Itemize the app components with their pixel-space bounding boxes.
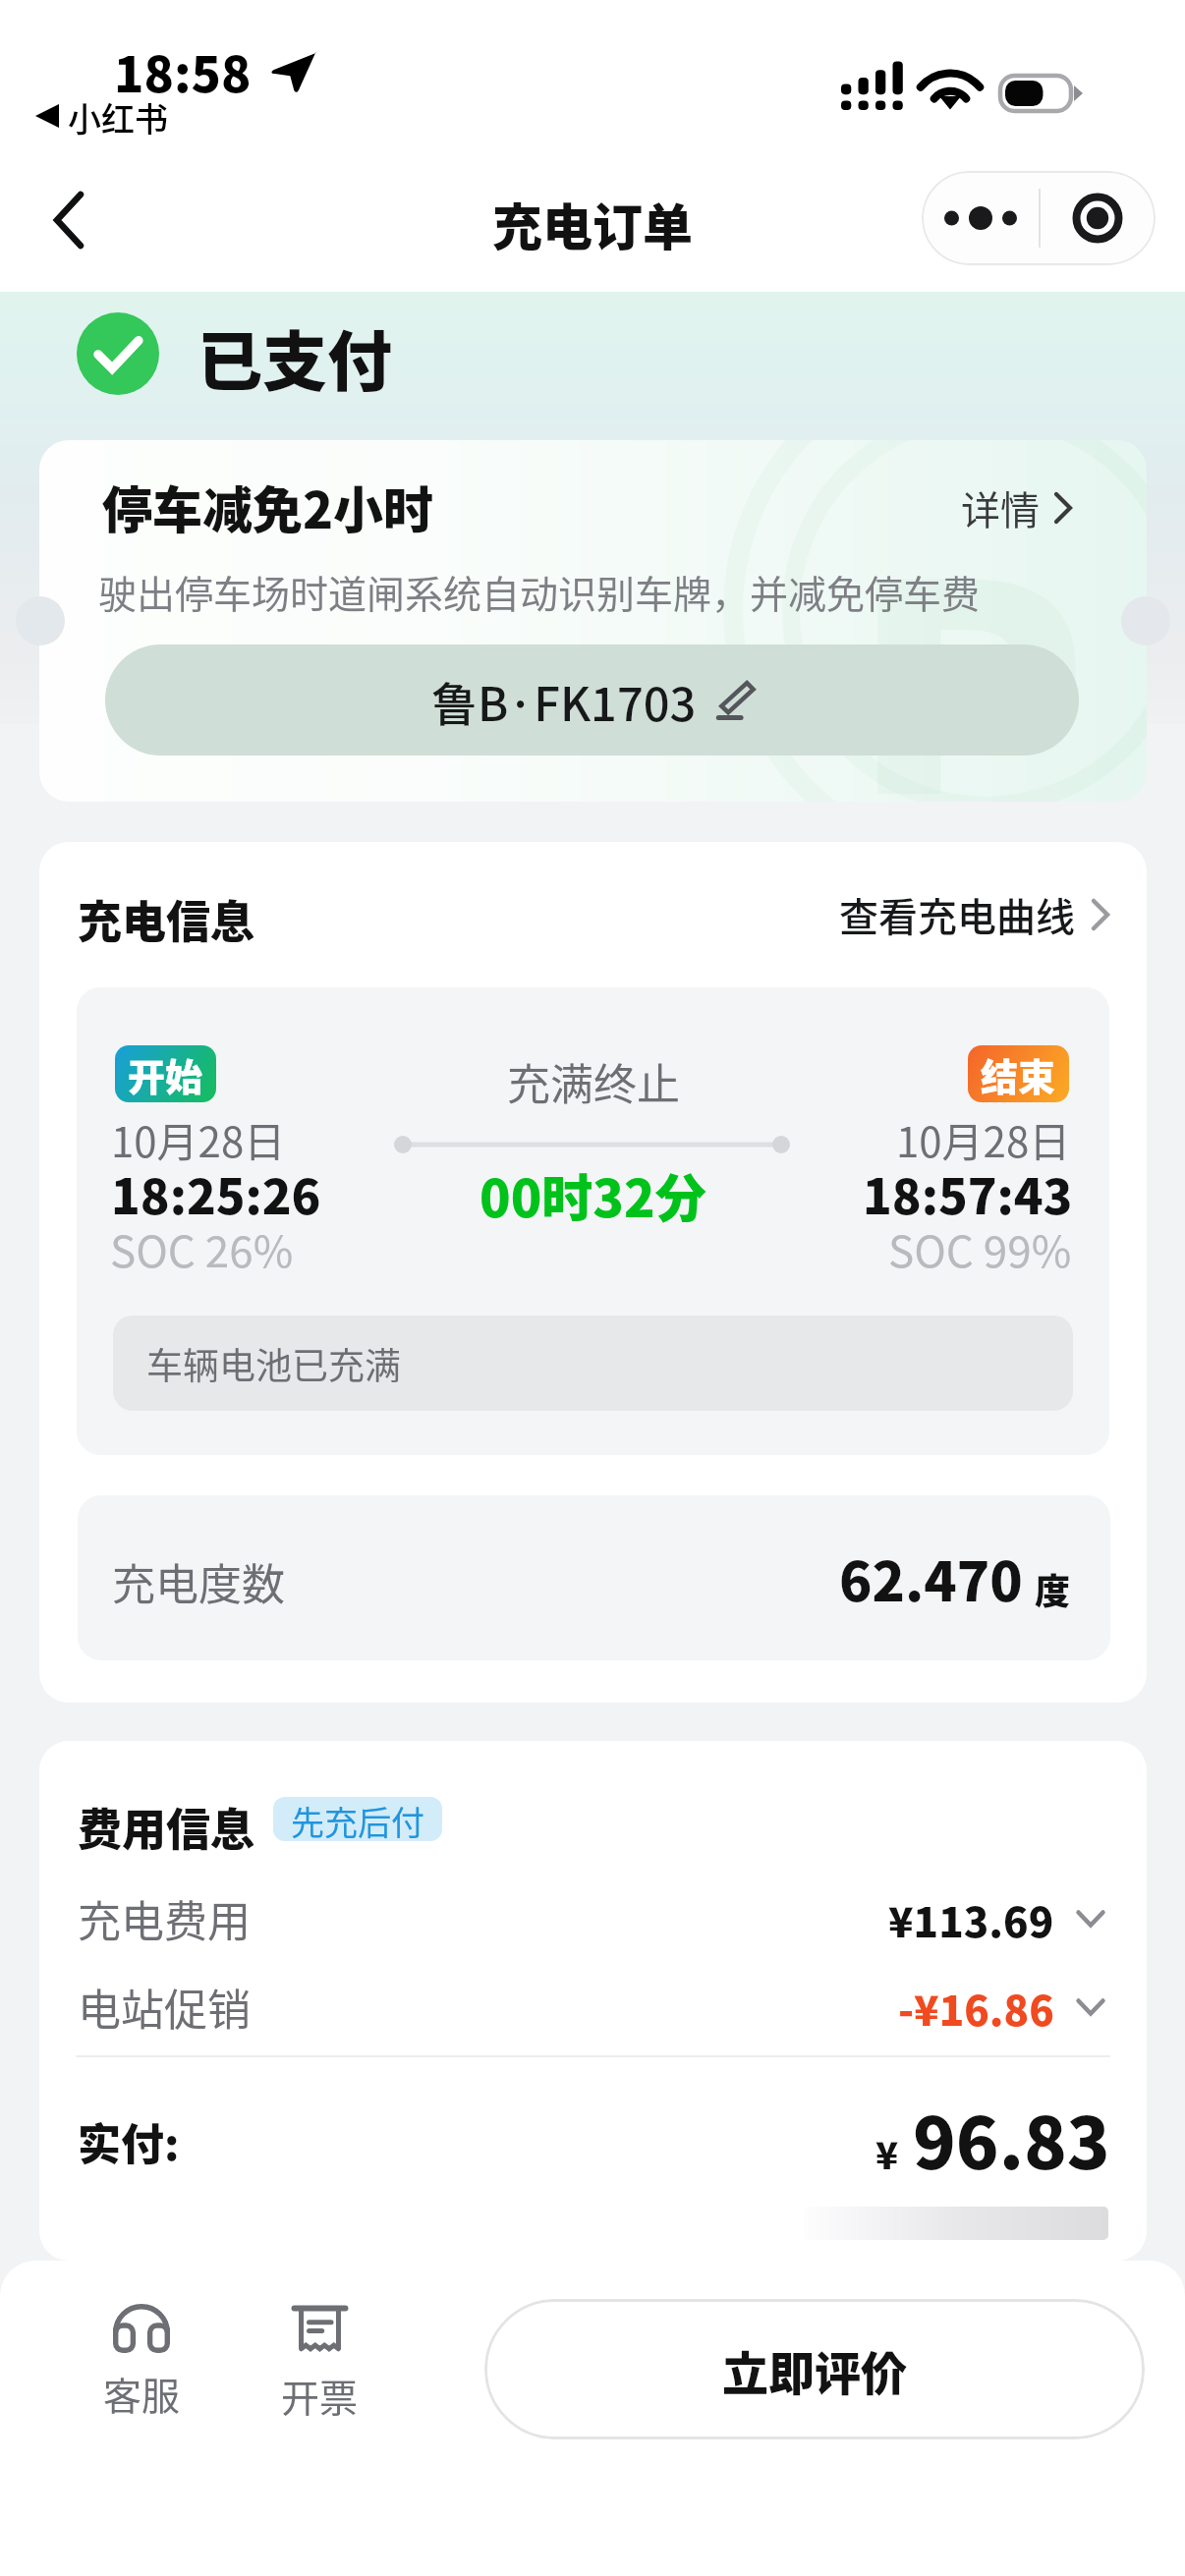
staticText: P <box>847 440 1091 794</box>
staticText: 开票 <box>281 2368 359 2423</box>
button[interactable]: 立即评价 <box>484 2299 1145 2439</box>
staticText: 小红书 <box>68 93 168 141</box>
button[interactable]: 电站促销 <box>78 1973 1105 2042</box>
button[interactable]: 鲁B·FK1703 <box>105 644 1079 756</box>
staticText: 62.470 <box>839 1539 1023 1617</box>
staticText: 18:58 <box>114 35 252 106</box>
staticText: 10月28日 <box>111 1109 286 1169</box>
staticText: 度 <box>1035 1563 1071 1614</box>
staticText: 驶出停车场时道闸系统自动识别车牌，并减免停车费 <box>98 564 981 619</box>
staticText: 车辆电池已充满 <box>146 1337 401 1390</box>
staticText: 18:25:26 <box>111 1158 321 1228</box>
staticText: 鲁B·FK1703 <box>431 667 697 734</box>
staticText: 充电订单 <box>492 188 694 260</box>
button[interactable]: Close mini program <box>1039 171 1156 265</box>
staticText: 电站促销 <box>78 1976 251 2039</box>
staticText: 实付: <box>78 2110 180 2173</box>
staticText: ¥ <box>875 2126 899 2180</box>
staticText: 96.83 <box>913 2087 1110 2189</box>
button[interactable]: Customer service <box>88 2304 195 2421</box>
staticText: 充满终止 <box>507 1050 680 1113</box>
button[interactable]: 充电费用 <box>78 1884 1105 1953</box>
staticText: 10月28日 <box>896 1109 1071 1169</box>
staticText: 客服 <box>103 2366 181 2421</box>
staticText: 充电度数 <box>112 1550 285 1613</box>
staticText: 费用信息 <box>78 1795 255 1859</box>
staticText: 已支付 <box>197 309 392 404</box>
staticText: -¥16.86 <box>898 1978 1054 2038</box>
staticText: 充电费用 <box>78 1887 251 1950</box>
staticText: 立即评价 <box>722 2336 907 2403</box>
staticText: 详情 <box>961 479 1040 536</box>
staticText: ¥113.69 <box>888 1889 1054 1949</box>
button[interactable]: 查看充电曲线 <box>825 885 1110 944</box>
staticText: 充电信息 <box>78 887 255 951</box>
staticText: 开始 <box>128 1047 203 1101</box>
staticText: 00时32分 <box>480 1158 706 1232</box>
button[interactable]: Back <box>22 173 116 267</box>
button[interactable]: More options <box>922 171 1039 265</box>
button[interactable]: 详情 <box>924 477 1073 538</box>
staticText: 查看充电曲线 <box>839 886 1075 943</box>
button[interactable]: Invoice <box>266 2304 372 2423</box>
staticText: SOC 99% <box>888 1217 1072 1280</box>
staticText: 结束 <box>981 1047 1056 1101</box>
staticText: 停车减免2小时 <box>102 471 434 543</box>
staticText: SOC 26% <box>110 1217 294 1280</box>
staticText: 18:57:43 <box>863 1158 1073 1228</box>
staticText: 先充后付 <box>291 1797 424 1841</box>
